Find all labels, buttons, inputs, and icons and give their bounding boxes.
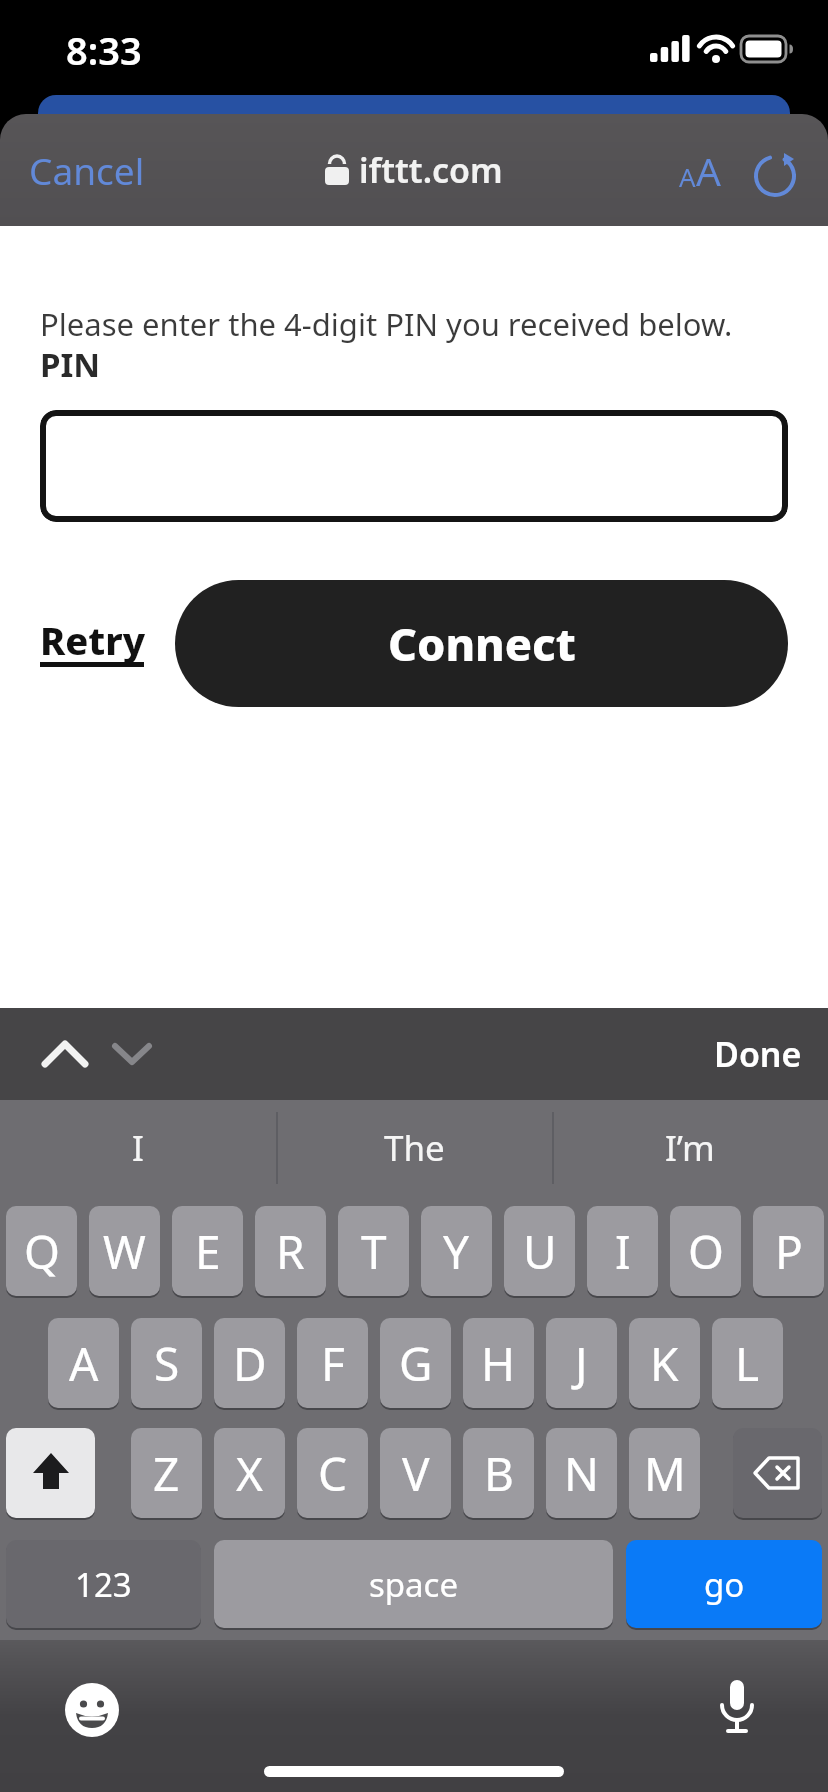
staticText: U: [523, 1220, 557, 1283]
staticText: N: [564, 1442, 599, 1505]
button[interactable]: I’m: [552, 1100, 828, 1196]
button[interactable]: H: [463, 1318, 534, 1408]
button[interactable]: F: [297, 1318, 368, 1408]
button[interactable]: Connect: [175, 580, 788, 707]
button[interactable]: [6, 1428, 95, 1518]
button[interactable]: W: [89, 1206, 160, 1296]
staticText: X: [236, 1442, 263, 1505]
staticText: L: [735, 1332, 760, 1395]
staticText: G: [399, 1332, 433, 1395]
staticText: Q: [24, 1220, 60, 1283]
button[interactable]: E: [172, 1206, 243, 1296]
button[interactable]: Y: [421, 1206, 492, 1296]
staticText: V: [402, 1442, 430, 1505]
staticText: E: [195, 1220, 221, 1283]
button[interactable]: Retry: [40, 614, 146, 666]
button[interactable]: C: [297, 1428, 368, 1518]
button[interactable]: Q: [6, 1206, 77, 1296]
staticText: H: [481, 1332, 516, 1395]
staticText: I: [132, 1124, 144, 1172]
button[interactable]: B: [463, 1428, 534, 1518]
staticText: Connect: [388, 613, 576, 674]
button[interactable]: O: [670, 1206, 741, 1296]
button[interactable]: P: [753, 1206, 824, 1296]
button[interactable]: M: [629, 1428, 700, 1518]
button[interactable]: I: [0, 1100, 276, 1196]
button[interactable]: A: [48, 1318, 119, 1408]
button[interactable]: [100, 1008, 164, 1100]
button[interactable]: X: [214, 1428, 285, 1518]
button[interactable]: D: [214, 1318, 285, 1408]
button[interactable]: [740, 144, 810, 204]
button[interactable]: The: [276, 1100, 552, 1196]
staticText: Cancel: [29, 145, 145, 195]
button[interactable]: S: [131, 1318, 202, 1408]
staticText: C: [318, 1442, 348, 1505]
button[interactable]: [40, 410, 788, 522]
button[interactable]: T: [338, 1206, 409, 1296]
staticText: F: [321, 1332, 345, 1395]
button[interactable]: G: [380, 1318, 451, 1408]
button[interactable]: Done: [688, 1008, 828, 1100]
staticText: B: [484, 1442, 514, 1505]
staticText: Z: [153, 1442, 180, 1505]
staticText: A: [69, 1332, 99, 1395]
staticText: S: [154, 1332, 180, 1395]
staticText: A: [679, 159, 696, 194]
staticText: A: [696, 144, 721, 197]
button[interactable]: L: [712, 1318, 783, 1408]
staticText: M: [644, 1442, 686, 1505]
staticText: go: [704, 1562, 745, 1607]
staticText: R: [276, 1220, 305, 1283]
button[interactable]: [706, 1672, 768, 1750]
button[interactable]: R: [255, 1206, 326, 1296]
button[interactable]: Cancel: [0, 114, 170, 226]
staticText: Y: [443, 1220, 470, 1283]
staticText: Please enter the 4-digit PIN you receive…: [40, 303, 733, 345]
staticText: 8:33: [66, 24, 142, 72]
button[interactable]: K: [629, 1318, 700, 1408]
staticText: The: [384, 1124, 445, 1172]
staticText: Done: [714, 1031, 802, 1077]
staticText: Retry: [40, 614, 146, 666]
staticText: ifttt.com: [359, 147, 503, 193]
button[interactable]: space: [214, 1540, 613, 1628]
staticText: 123: [75, 1562, 132, 1607]
button[interactable]: U: [504, 1206, 575, 1296]
staticText: I’m: [665, 1124, 715, 1172]
staticText: J: [575, 1332, 588, 1395]
staticText: PIN: [40, 342, 101, 387]
staticText: O: [688, 1220, 724, 1283]
button[interactable]: N: [546, 1428, 617, 1518]
staticText: W: [103, 1220, 146, 1283]
button[interactable]: [733, 1428, 822, 1518]
button[interactable]: [60, 1678, 124, 1742]
button[interactable]: J: [546, 1318, 617, 1408]
button[interactable]: Z: [131, 1428, 202, 1518]
button[interactable]: 123: [6, 1540, 201, 1628]
button[interactable]: I: [587, 1206, 658, 1296]
staticText: P: [775, 1220, 803, 1283]
staticText: K: [650, 1332, 679, 1395]
staticText: D: [233, 1332, 267, 1395]
staticText: space: [369, 1562, 459, 1607]
button[interactable]: A: [655, 114, 745, 226]
button[interactable]: go: [626, 1540, 822, 1628]
staticText: T: [361, 1220, 387, 1283]
button[interactable]: V: [380, 1428, 451, 1518]
staticText: I: [615, 1220, 631, 1283]
button[interactable]: [30, 1008, 100, 1100]
